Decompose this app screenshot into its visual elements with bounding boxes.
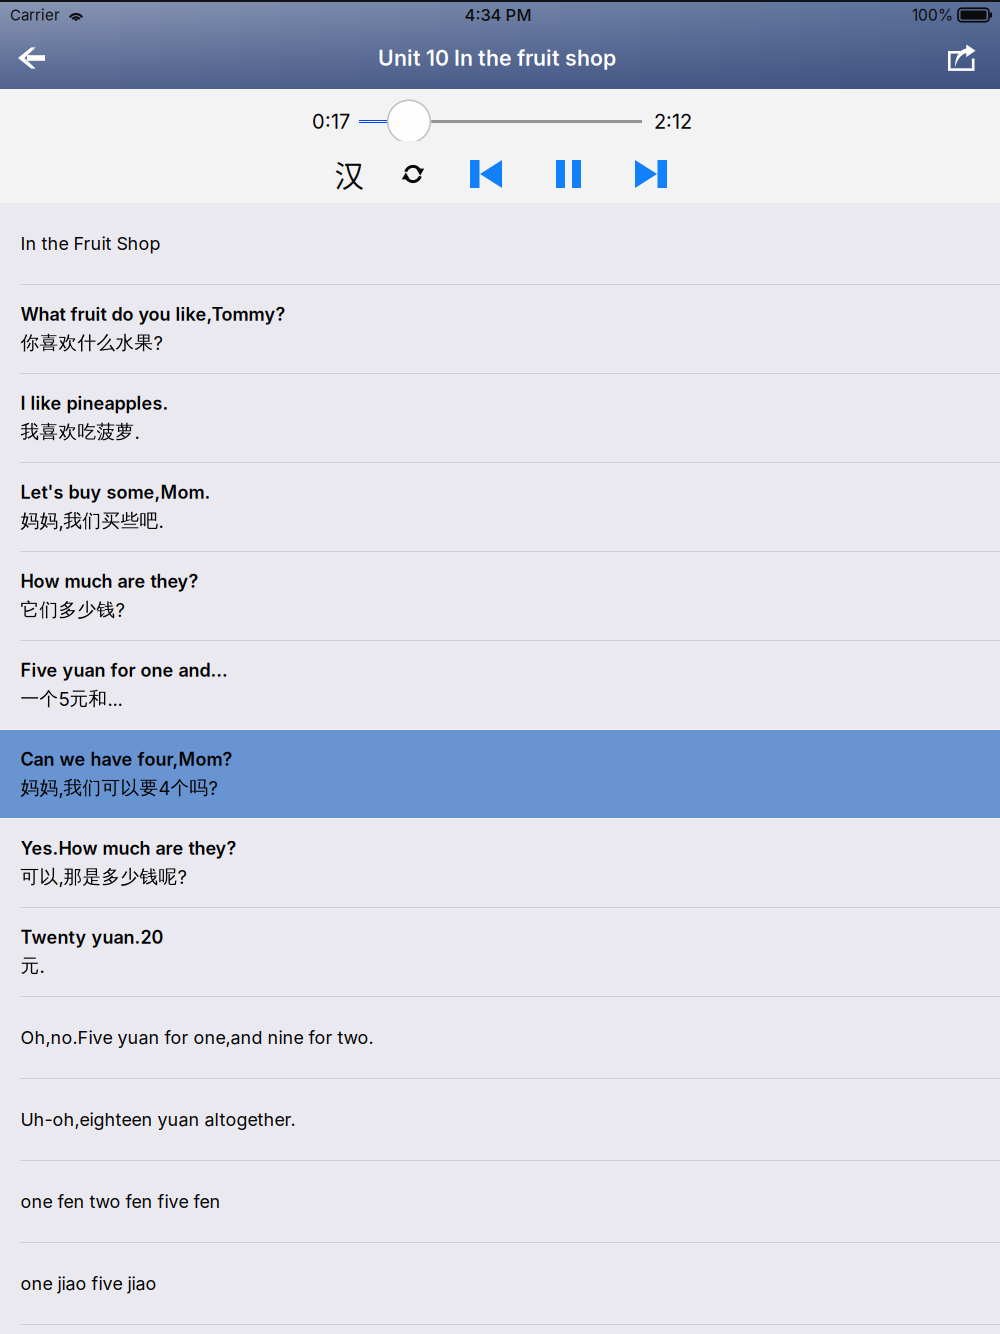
staticText: 一个5元和... bbox=[20, 687, 122, 710]
button[interactable]: Share bbox=[914, 35, 976, 81]
staticText: Twenty yuan.20 bbox=[20, 926, 163, 948]
button[interactable]: Oh,no.Five yuan for one,and nine for two… bbox=[0, 997, 1000, 1079]
staticText: Uh-oh,eighteen yuan altogether. bbox=[20, 1109, 295, 1130]
staticText: 可以,那是多少钱呢? bbox=[20, 865, 186, 888]
staticText: 妈妈,我们买些吧. bbox=[20, 509, 163, 532]
staticText: 妈妈,我们可以要4个吗? bbox=[20, 776, 217, 799]
button[interactable]: one jiao five jiao bbox=[0, 1243, 1000, 1325]
staticText: Five yuan for one and… bbox=[20, 659, 227, 681]
button[interactable]: Five yuan for one and… bbox=[0, 641, 1000, 730]
button[interactable]: Let's buy some,Mom. bbox=[0, 463, 1000, 552]
button[interactable]: Repeat bbox=[381, 154, 445, 194]
staticText: one jiao five jiao bbox=[20, 1273, 156, 1294]
button[interactable]: one fen two fen five fen bbox=[0, 1161, 1000, 1243]
button[interactable]: What fruit do you like,Tommy? bbox=[0, 285, 1000, 374]
staticText: 0:17 bbox=[312, 109, 350, 134]
staticText: Can we have four,Mom? bbox=[20, 748, 232, 770]
button[interactable]: Uh-oh,eighteen yuan altogether. bbox=[0, 1079, 1000, 1161]
staticText: 你喜欢什么水果? bbox=[20, 331, 162, 354]
staticText: Yes.How much are they? bbox=[20, 837, 236, 859]
staticText: 100% bbox=[912, 6, 953, 24]
staticText: one fen two fen five fen bbox=[20, 1191, 220, 1212]
button[interactable]: Show Chinese bbox=[317, 154, 381, 194]
button[interactable]: I like pineapples. bbox=[0, 374, 1000, 463]
button[interactable]: Next track bbox=[610, 154, 692, 194]
staticText: 元. bbox=[20, 954, 44, 977]
button[interactable]: Twenty yuan.20 bbox=[0, 908, 1000, 997]
staticText: 它们多少钱? bbox=[20, 598, 124, 621]
button[interactable]: Can we have four,Mom? bbox=[0, 730, 1000, 819]
button[interactable]: In the Fruit Shop bbox=[0, 203, 1000, 285]
staticText: Unit 10 In the fruit shop bbox=[378, 45, 616, 71]
button[interactable]: Yes.How much are they? bbox=[0, 819, 1000, 908]
staticText: 2:12 bbox=[654, 109, 692, 134]
staticText: I like pineapples. bbox=[20, 392, 168, 414]
button[interactable]: Previous track bbox=[445, 154, 527, 194]
staticText: 汉 bbox=[334, 153, 363, 195]
staticText: Oh,no.Five yuan for one,and nine for two… bbox=[20, 1027, 373, 1048]
staticText: Carrier bbox=[10, 6, 60, 24]
button[interactable]: Pause bbox=[527, 154, 610, 194]
staticText: How much are they? bbox=[20, 570, 198, 592]
staticText: 4:34 PM bbox=[464, 5, 531, 25]
button[interactable]: Back bbox=[18, 35, 80, 81]
staticText: Let's buy some,Mom. bbox=[20, 481, 210, 503]
staticText: In the Fruit Shop bbox=[20, 233, 160, 254]
staticText: What fruit do you like,Tommy? bbox=[20, 303, 285, 325]
staticText: 我喜欢吃菠萝. bbox=[20, 420, 139, 443]
button[interactable]: How much are they? bbox=[0, 552, 1000, 641]
